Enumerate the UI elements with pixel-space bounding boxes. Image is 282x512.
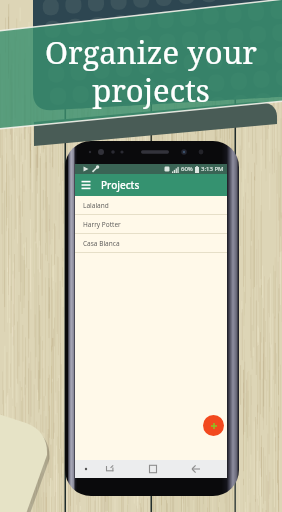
button[interactable]: Harry Potter xyxy=(75,215,227,233)
button[interactable]: Assistant xyxy=(77,460,95,478)
staticText: 3:13 PM xyxy=(201,165,224,173)
button[interactable]: Recent apps xyxy=(144,460,162,478)
button[interactable]: Lalaland xyxy=(75,196,227,214)
button[interactable]: Hide keyboard xyxy=(101,460,119,478)
button[interactable]: Back xyxy=(187,460,205,478)
button[interactable]: Open navigation menu xyxy=(75,174,97,196)
staticText: Lalaland xyxy=(83,201,109,210)
staticText: Projects xyxy=(101,178,140,192)
button[interactable]: Add project xyxy=(203,415,224,436)
staticText: Harry Potter xyxy=(83,220,121,229)
staticText: Casa Blanca xyxy=(83,239,120,248)
staticText: 60% xyxy=(181,165,193,173)
staticText: Organize your projects xyxy=(10,31,282,111)
button[interactable]: Casa Blanca xyxy=(75,234,227,252)
